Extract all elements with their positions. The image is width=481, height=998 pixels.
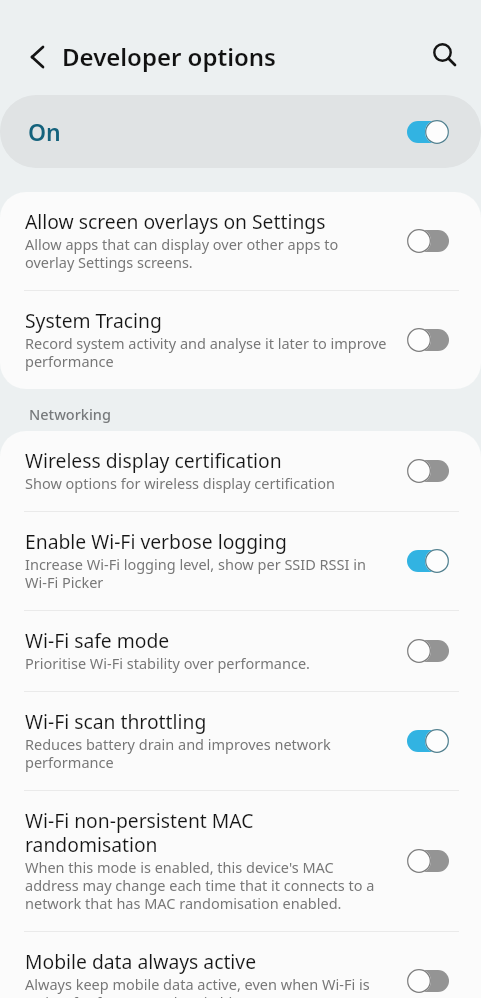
button[interactable]: Mobile data always active	[0, 932, 481, 998]
button[interactable]: Search	[420, 31, 468, 79]
staticText: Allow screen overlays on Settings	[25, 211, 326, 235]
button[interactable]: Wi-Fi non-persistent MAC randomisation	[407, 848, 449, 874]
button[interactable]: Wireless display certification	[0, 431, 481, 511]
staticText: System Tracing	[25, 310, 162, 334]
staticText: Allow apps that can display over other a…	[25, 235, 388, 271]
button[interactable]: Allow screen overlays on Settings	[407, 228, 449, 254]
button[interactable]: Navigate up	[12, 33, 60, 81]
button[interactable]: Enable Wi-Fi verbose logging	[407, 548, 449, 574]
staticText: When this mode is enabled, this device's…	[25, 858, 388, 912]
staticText: Wi-Fi scan throttling	[25, 711, 207, 735]
staticText: On	[28, 116, 61, 147]
staticText: Wireless display certification	[25, 450, 282, 474]
staticText: Show options for wireless display certif…	[25, 474, 335, 492]
staticText: Networking	[29, 404, 111, 424]
button[interactable]: Mobile data always active	[407, 968, 449, 994]
button[interactable]: System Tracing	[407, 327, 449, 353]
button[interactable]: Developer options on	[407, 119, 449, 145]
staticText: Mobile data always active	[25, 951, 257, 975]
button[interactable]: Allow screen overlays on Settings	[0, 192, 481, 290]
button[interactable]: System Tracing	[0, 291, 481, 389]
staticText: Developer options	[62, 46, 276, 72]
staticText: Prioritise Wi-Fi stability over performa…	[25, 654, 310, 672]
staticText: Wi-Fi safe mode	[25, 630, 170, 654]
staticText: Reduces battery drain and improves netwo…	[25, 735, 388, 771]
staticText: Enable Wi-Fi verbose logging	[25, 531, 287, 555]
staticText: Record system activity and analyse it la…	[25, 334, 388, 370]
staticText: Wi-Fi non-persistent MAC randomisation	[25, 810, 388, 858]
button[interactable]: Wi-Fi scan throttling	[0, 692, 481, 790]
button[interactable]: On	[0, 95, 481, 168]
button[interactable]: Wi-Fi safe mode	[407, 638, 449, 664]
button[interactable]: Wi-Fi scan throttling	[407, 728, 449, 754]
staticText: Increase Wi-Fi logging level, show per S…	[25, 555, 388, 591]
button[interactable]: Wi-Fi non-persistent MAC randomisation	[0, 791, 481, 931]
button[interactable]: Enable Wi-Fi verbose logging	[0, 512, 481, 610]
staticText: Always keep mobile data active, even whe…	[25, 975, 388, 998]
button[interactable]: Wireless display certification	[407, 458, 449, 484]
button[interactable]: Wi-Fi safe mode	[0, 611, 481, 691]
